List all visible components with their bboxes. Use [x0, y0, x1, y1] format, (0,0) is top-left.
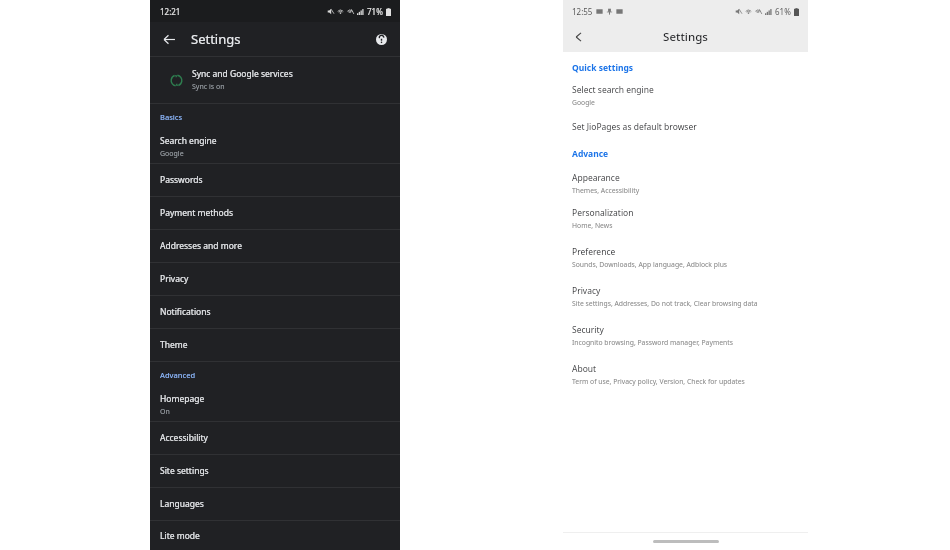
- staticText: Privacy: [572, 285, 601, 297]
- button[interactable]: Preference: [563, 245, 808, 270]
- staticText: Term of use, Privacy policy, Version, Ch…: [572, 377, 745, 386]
- staticText: Sync and Google services: [192, 68, 293, 80]
- button[interactable]: Appearance: [563, 171, 808, 196]
- button[interactable]: Addresses and more: [150, 230, 400, 262]
- button[interactable]: Select search engine: [563, 83, 808, 108]
- button[interactable]: Homepage: [150, 388, 400, 421]
- button[interactable]: Back: [156, 26, 182, 52]
- button[interactable]: Set JioPages as default browser: [563, 120, 808, 134]
- button[interactable]: Help: [369, 27, 393, 51]
- button[interactable]: About: [563, 362, 808, 387]
- staticText: Security: [572, 324, 604, 336]
- staticText: Accessibility: [160, 432, 208, 444]
- staticText: Basics: [160, 112, 183, 122]
- button[interactable]: Payment methods: [150, 197, 400, 229]
- staticText: Advanced: [160, 370, 196, 380]
- staticText: Select search engine: [572, 84, 654, 96]
- staticText: Appearance: [572, 172, 620, 184]
- staticText: Homepage: [160, 393, 205, 405]
- button[interactable]: Theme: [150, 329, 400, 361]
- staticText: Preference: [572, 246, 616, 258]
- staticText: 12:55: [572, 6, 593, 17]
- staticText: Quick settings: [572, 62, 634, 74]
- button[interactable]: Site settings: [150, 455, 400, 487]
- staticText: Incognito browsing, Password manager, Pa…: [572, 338, 733, 347]
- button[interactable]: Privacy: [150, 263, 400, 295]
- staticText: Google: [572, 98, 595, 107]
- staticText: Personalization: [572, 207, 634, 219]
- staticText: Google: [160, 149, 184, 159]
- button[interactable]: Privacy: [563, 284, 808, 309]
- staticText: Set JioPages as default browser: [572, 121, 697, 133]
- staticText: Privacy: [160, 273, 189, 285]
- staticText: 61%: [775, 6, 791, 17]
- button[interactable]: Search engine: [150, 130, 400, 163]
- staticText: Theme: [160, 339, 188, 351]
- button[interactable]: Sync and Google services: [150, 57, 400, 103]
- staticText: Settings: [663, 29, 708, 45]
- staticText: On: [160, 407, 170, 417]
- staticText: Languages: [160, 498, 204, 510]
- staticText: Advance: [572, 148, 609, 160]
- staticText: Sync is on: [192, 82, 225, 92]
- staticText: Notifications: [160, 306, 211, 318]
- button[interactable]: Accessibility: [150, 422, 400, 454]
- staticText: Home, News: [572, 221, 613, 230]
- staticText: Passwords: [160, 174, 203, 186]
- staticText: Lite mode: [160, 530, 200, 542]
- staticText: About: [572, 363, 597, 375]
- staticText: Site settings, Addresses, Do not track, …: [572, 299, 758, 308]
- staticText: Settings: [191, 30, 241, 48]
- staticText: Site settings: [160, 465, 209, 477]
- staticText: Themes, Accessibility: [572, 186, 640, 195]
- staticText: Payment methods: [160, 207, 234, 219]
- staticText: Search engine: [160, 135, 217, 147]
- button[interactable]: Lite mode: [150, 521, 400, 550]
- button[interactable]: Passwords: [150, 164, 400, 196]
- button[interactable]: Languages: [150, 488, 400, 520]
- button[interactable]: Back: [567, 25, 591, 49]
- button[interactable]: Security: [563, 323, 808, 348]
- button[interactable]: Personalization: [563, 206, 808, 231]
- staticText: 71%: [367, 6, 383, 17]
- staticText: 12:21: [160, 6, 181, 17]
- button[interactable]: Notifications: [150, 296, 400, 328]
- staticText: Sounds, Downloads, App language, Adblock…: [572, 260, 728, 269]
- staticText: Addresses and more: [160, 240, 242, 252]
